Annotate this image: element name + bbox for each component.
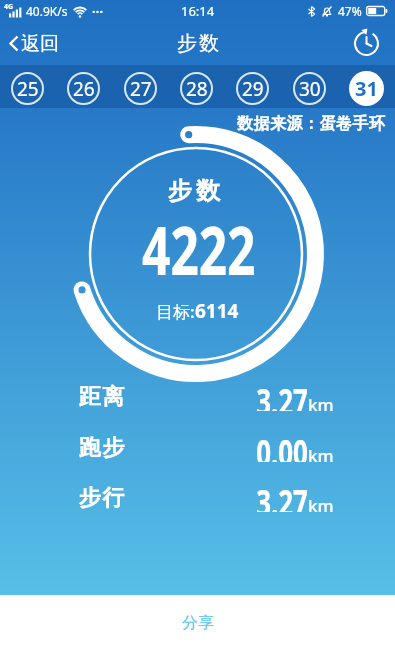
staticText: 28 [186, 76, 208, 102]
button[interactable]: 28 [180, 72, 213, 105]
staticText: 步数 [176, 31, 220, 56]
button[interactable]: 返回 [9, 32, 59, 56]
staticText: km [308, 494, 334, 517]
staticText: 数据来源：蛋卷手环 [237, 114, 386, 134]
staticText: 40.9K/s [26, 3, 68, 19]
button[interactable]: 25 [11, 72, 44, 105]
button[interactable]: 30 [293, 72, 326, 105]
staticText: 3.27 [256, 479, 308, 512]
staticText: 目标: [156, 300, 195, 323]
staticText: … [92, 0, 104, 17]
staticText: 0.00 [256, 429, 308, 462]
staticText: 步行 [78, 484, 125, 512]
button[interactable]: 27 [124, 72, 157, 105]
staticText: 3.27 [256, 378, 308, 411]
staticText: 30 [299, 76, 321, 102]
button[interactable]: 26 [67, 72, 100, 105]
staticText: km [308, 444, 334, 467]
staticText: 步数 [166, 176, 222, 206]
staticText: km [308, 393, 334, 416]
staticText: 47% [338, 3, 362, 19]
staticText: 分享 [182, 613, 214, 633]
staticText: 29 [242, 76, 264, 102]
staticText: 4G [4, 2, 14, 12]
staticText: 4222 [142, 203, 256, 294]
staticText: 跑步 [78, 434, 125, 462]
staticText: 31 [355, 75, 378, 102]
staticText: 返回 [21, 32, 59, 56]
button[interactable] [352, 29, 381, 58]
staticText: 27 [130, 76, 152, 102]
staticText: 16:14 [181, 2, 215, 20]
button[interactable]: 29 [236, 72, 269, 105]
staticText: 26 [73, 76, 95, 102]
button[interactable]: 分享 [0, 595, 395, 650]
staticText: 距离 [78, 383, 125, 411]
button[interactable]: 31 [349, 71, 384, 106]
staticText: 25 [17, 76, 39, 102]
staticText: 6114 [195, 298, 239, 324]
